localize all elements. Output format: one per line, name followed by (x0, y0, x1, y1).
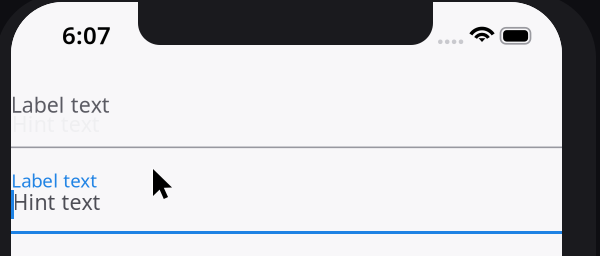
staticText: Hint text (13, 188, 101, 216)
staticText: Label text (11, 168, 97, 193)
staticText: 6:07 (62, 19, 111, 51)
button[interactable]: Label text (11, 2, 562, 148)
staticText: Label text (11, 90, 110, 119)
button[interactable]: Label text (11, 150, 562, 246)
staticText: Hint text (12, 109, 100, 138)
